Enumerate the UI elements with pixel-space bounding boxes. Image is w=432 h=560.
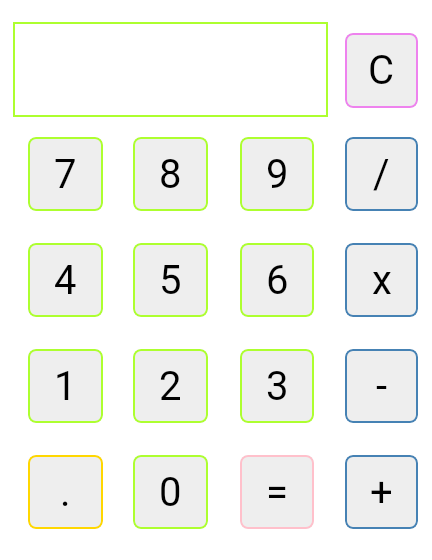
staticText: 0 [159,469,182,516]
staticText: 7 [54,151,77,198]
button[interactable]: 8 [133,137,208,211]
staticText: 6 [266,257,289,304]
button[interactable]: = [240,455,314,529]
button[interactable]: 4 [28,243,103,317]
button[interactable]: 6 [240,243,314,317]
staticText: C [368,47,395,94]
staticText: . [60,469,71,516]
button[interactable]: 9 [240,137,314,211]
button[interactable]: / [345,137,418,211]
staticText: 3 [266,363,289,410]
button[interactable]: 1 [28,349,103,423]
button[interactable]: - [345,349,418,423]
staticText: 1 [54,363,77,410]
button[interactable] [13,22,328,117]
button[interactable]: C [345,33,418,108]
staticText: x [372,257,392,304]
staticText: 8 [159,151,182,198]
button[interactable]: . [28,455,103,529]
button[interactable]: 2 [133,349,208,423]
staticText: + [370,469,393,516]
button[interactable]: + [345,455,418,529]
button[interactable]: 0 [133,455,208,529]
staticText: 2 [159,363,182,410]
staticText: 5 [159,257,182,304]
button[interactable]: 3 [240,349,314,423]
staticText: - [376,363,388,410]
button[interactable]: x [345,243,418,317]
staticText: 9 [266,151,289,198]
staticText: 4 [54,257,77,304]
staticText: = [266,469,288,516]
button[interactable]: 5 [133,243,208,317]
staticText: / [373,151,390,198]
button[interactable]: 7 [28,137,103,211]
